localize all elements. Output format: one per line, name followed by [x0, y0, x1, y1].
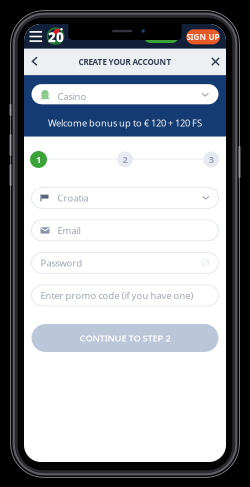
- staticText: Casino: [57, 90, 86, 103]
- button[interactable]: Back: [26, 52, 44, 70]
- button[interactable]: Email: [31, 220, 218, 241]
- button[interactable]: SIGN UP: [186, 29, 220, 44]
- button[interactable]: Password: [31, 252, 218, 273]
- button[interactable]: CONTINUE TO STEP 2: [31, 324, 218, 352]
- staticText: CONTINUE TO STEP 2: [79, 332, 170, 344]
- staticText: Password: [40, 257, 82, 269]
- button[interactable]: Menu: [27, 27, 44, 45]
- staticText: 1: [36, 153, 41, 166]
- staticText: 3: [209, 153, 214, 166]
- button[interactable]: Close: [206, 53, 224, 71]
- button[interactable]: Enter promo code (if you have one): [31, 285, 218, 306]
- button[interactable]: Casino: [31, 84, 218, 104]
- staticText: Email: [57, 224, 80, 237]
- staticText: 2: [122, 153, 127, 166]
- staticText: Welcome bonus up to € 120 + 120 FS: [48, 117, 202, 129]
- staticText: 20: [48, 28, 64, 46]
- button[interactable]: Croatia: [31, 187, 218, 208]
- staticText: Croatia: [57, 192, 88, 204]
- staticText: CREATE YOUR ACCOUNT: [78, 56, 171, 67]
- staticText: Enter promo code (if you have one): [40, 289, 193, 302]
- staticText: SIGN UP: [187, 31, 220, 42]
